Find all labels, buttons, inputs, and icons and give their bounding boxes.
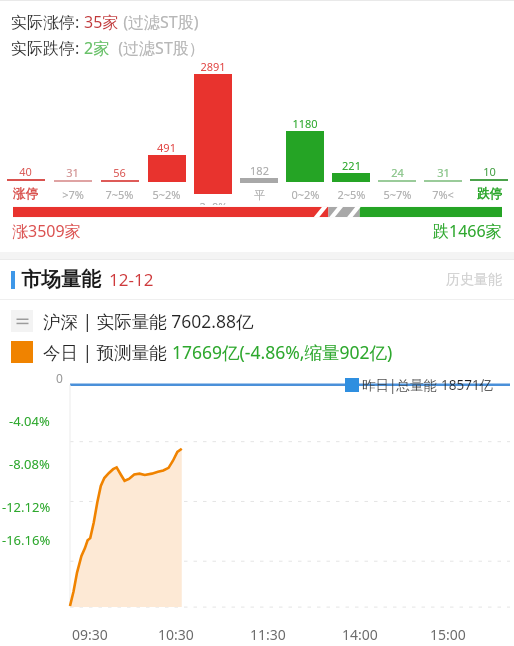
staticText: 31 bbox=[437, 165, 450, 180]
button[interactable]: 491 bbox=[143, 59, 190, 205]
staticText: 7%< bbox=[432, 187, 454, 202]
staticText: 1180 bbox=[292, 116, 318, 131]
staticText: 沪深 | 实际量能 7602.88亿 bbox=[43, 309, 254, 333]
staticText: 2891 bbox=[200, 59, 226, 74]
staticText: -4.04% bbox=[9, 412, 50, 430]
staticText: 0~2% bbox=[291, 187, 320, 202]
staticText: 31 bbox=[66, 165, 79, 180]
staticText: 5~7% bbox=[383, 187, 412, 202]
staticText: 2家 bbox=[84, 37, 110, 59]
staticText: 0 bbox=[56, 370, 63, 386]
staticText: 跌停 bbox=[477, 186, 502, 202]
staticText: >7% bbox=[62, 187, 84, 202]
staticText: 7~5% bbox=[105, 187, 134, 202]
button[interactable]: 182 bbox=[236, 59, 282, 205]
staticText: 实际跌停: bbox=[11, 37, 84, 59]
staticText: 历史量能 bbox=[446, 271, 502, 289]
staticText: 17669亿(-4.86%,缩量902亿) bbox=[172, 340, 393, 364]
staticText: 491 bbox=[157, 140, 176, 155]
staticText: (过滤ST股) bbox=[119, 11, 199, 33]
staticText: 182 bbox=[250, 163, 269, 178]
button[interactable]: 涨跌家数比例条 bbox=[0, 205, 514, 219]
staticText: 09:30 bbox=[72, 625, 108, 644]
staticText: -8.08% bbox=[9, 455, 50, 473]
staticText: 5~2% bbox=[152, 187, 181, 202]
button[interactable]: 量能分时走势图 bbox=[0, 368, 514, 646]
staticText: 实际涨停: bbox=[11, 11, 84, 33]
staticText: 10:30 bbox=[158, 625, 194, 644]
staticText: 涨停 bbox=[13, 186, 38, 202]
staticText: (过滤ST股） bbox=[110, 37, 205, 59]
staticText: 2~0% bbox=[199, 199, 228, 205]
button[interactable]: 31 bbox=[49, 59, 96, 205]
staticText: 昨日|总量能 bbox=[362, 376, 441, 394]
staticText: 40 bbox=[19, 164, 32, 179]
staticText: 221 bbox=[342, 158, 361, 173]
staticText: 2~5% bbox=[337, 187, 366, 202]
button[interactable]: 1180 bbox=[282, 59, 328, 205]
staticText: 18571亿 bbox=[441, 376, 494, 394]
button[interactable]: 2891 bbox=[190, 59, 236, 205]
staticText: 涨3509家 bbox=[12, 220, 81, 242]
button[interactable]: 24 bbox=[374, 59, 420, 205]
staticText: 12-12 bbox=[109, 268, 154, 291]
staticText: 35家 bbox=[84, 11, 119, 33]
button[interactable]: 221 bbox=[328, 59, 374, 205]
staticText: 跌1466家 bbox=[433, 220, 502, 242]
staticText: 56 bbox=[113, 165, 126, 180]
staticText: 14:00 bbox=[342, 625, 378, 644]
button[interactable]: 10 bbox=[466, 59, 512, 205]
button[interactable]: 56 bbox=[96, 59, 143, 205]
staticText: 10 bbox=[483, 164, 496, 179]
button[interactable]: 市场量能 bbox=[0, 260, 514, 299]
staticText: 平 bbox=[254, 188, 265, 202]
button[interactable]: 40 bbox=[2, 59, 49, 205]
staticText: 11:30 bbox=[250, 625, 286, 644]
staticText: 市场量能 bbox=[21, 267, 101, 292]
staticText: -16.16% bbox=[2, 531, 51, 549]
staticText: 15:00 bbox=[430, 625, 466, 644]
staticText: 24 bbox=[391, 165, 404, 180]
button[interactable]: 31 bbox=[420, 59, 466, 205]
staticText: -12.12% bbox=[2, 498, 51, 516]
staticText: 今日 | 预测量能 bbox=[43, 340, 172, 364]
